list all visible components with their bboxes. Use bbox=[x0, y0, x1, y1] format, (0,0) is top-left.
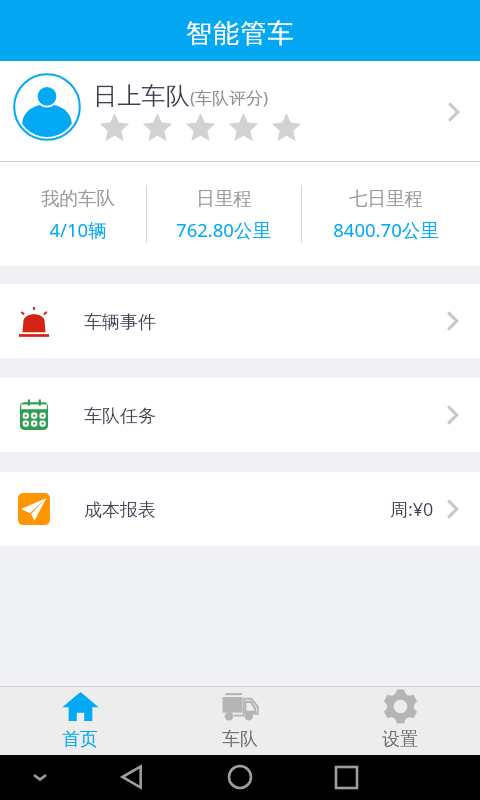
button[interactable]: 七日里程 bbox=[301, 162, 470, 266]
staticText: 8400.70公里 bbox=[333, 217, 439, 242]
staticText: 4/10辆 bbox=[49, 217, 107, 242]
button[interactable]: 我的车队 bbox=[10, 162, 146, 266]
staticText: 首页 bbox=[62, 728, 98, 751]
staticText: 762.80公里 bbox=[176, 217, 271, 242]
button[interactable]: 车队 bbox=[160, 687, 320, 751]
button[interactable]: 首页 bbox=[0, 687, 160, 751]
button[interactable]: 成本报表 bbox=[0, 472, 480, 546]
staticText: 周:¥0 bbox=[390, 497, 434, 522]
staticText: 七日里程 bbox=[349, 187, 423, 210]
button[interactable]: 日里程 bbox=[146, 162, 301, 266]
staticText: 车队任务 bbox=[84, 405, 156, 428]
staticText: 车队 bbox=[222, 728, 258, 751]
staticText: 车辆事件 bbox=[84, 311, 156, 334]
button[interactable]: 车辆事件 bbox=[0, 284, 480, 358]
button[interactable]: 日上车队 bbox=[0, 61, 480, 161]
staticText: 日里程 bbox=[196, 187, 252, 210]
staticText: 设置 bbox=[382, 728, 418, 751]
staticText: (车队评分) bbox=[190, 86, 269, 109]
staticText: 智能管车 bbox=[186, 17, 295, 50]
staticText: 我的车队 bbox=[41, 187, 115, 210]
button[interactable]: 设置 bbox=[320, 687, 480, 751]
staticText: 日上车队 bbox=[93, 81, 190, 111]
button[interactable]: 车队任务 bbox=[0, 378, 480, 452]
staticText: 成本报表 bbox=[84, 499, 156, 522]
